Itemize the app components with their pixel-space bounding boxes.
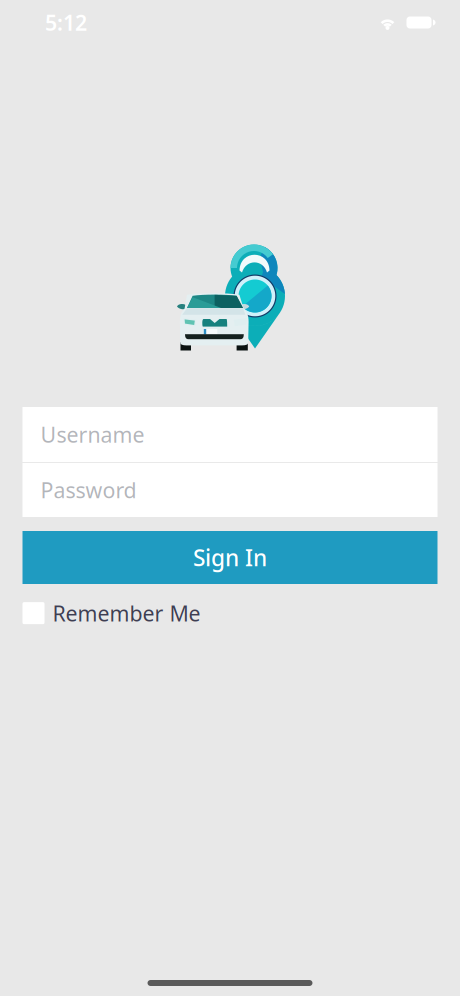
- button[interactable]: Password: [22, 463, 437, 517]
- button[interactable]: Username: [22, 407, 437, 462]
- staticText: Remember Me: [52, 599, 200, 627]
- staticText: 5:12: [45, 8, 87, 37]
- staticText: Sign In: [193, 542, 267, 572]
- staticText: Password: [40, 476, 136, 504]
- button[interactable]: Sign In: [22, 531, 437, 584]
- staticText: Username: [40, 420, 144, 449]
- button[interactable]: Remember Me: [22, 599, 437, 627]
